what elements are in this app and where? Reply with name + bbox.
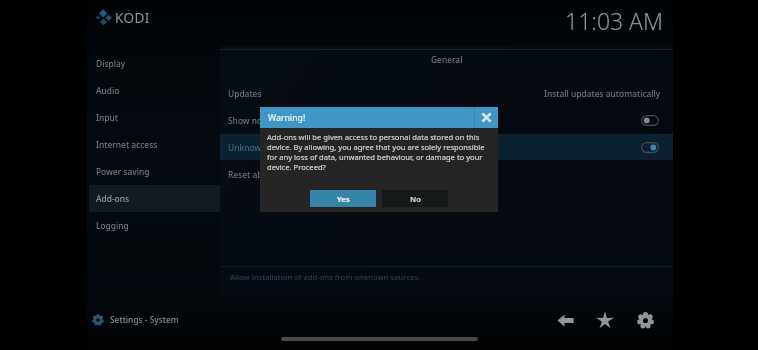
- staticText: Allow installation of add-ons from unkno…: [230, 272, 421, 282]
- button[interactable]: Yes: [310, 190, 376, 207]
- staticText: KODI: [115, 9, 150, 27]
- staticText: 11:03 AM: [565, 5, 664, 36]
- button[interactable]: Updates: [220, 80, 673, 106]
- button[interactable]: Power saving: [89, 158, 220, 185]
- staticText: Internet access: [96, 139, 158, 150]
- button[interactable]: Logging: [89, 212, 220, 239]
- button[interactable]: Toggle off: [641, 115, 659, 126]
- button[interactable]: No: [382, 190, 448, 207]
- button[interactable]: Favourites: [592, 307, 618, 333]
- staticText: General: [431, 54, 463, 65]
- staticText: Add-ons will be given access to personal…: [267, 132, 499, 172]
- button[interactable]: Audio: [89, 77, 220, 104]
- staticText: Input: [96, 112, 118, 123]
- staticText: Install updates automatically: [544, 88, 661, 99]
- staticText: No: [410, 194, 421, 204]
- staticText: Updates: [228, 88, 262, 99]
- button[interactable]: Input: [89, 104, 220, 131]
- button[interactable]: Internet access: [89, 131, 220, 158]
- button[interactable]: Settings - System: [92, 308, 179, 326]
- staticText: Settings - System: [110, 314, 179, 325]
- staticText: Reset above settings to default: [228, 169, 353, 180]
- staticText: Unknown sources: [228, 142, 300, 153]
- staticText: Add-ons: [96, 193, 130, 204]
- staticText: Show notifications: [228, 115, 302, 126]
- staticText: Power saving: [96, 166, 150, 177]
- button[interactable]: Reset above settings to default: [220, 161, 673, 187]
- staticText: Display: [96, 58, 126, 69]
- button[interactable]: Toggle on: [641, 142, 659, 153]
- button[interactable]: Settings: [632, 307, 658, 333]
- button[interactable]: Show notifications: [220, 107, 673, 133]
- staticText: Warning!: [268, 112, 306, 124]
- button[interactable]: Add-ons: [89, 185, 220, 212]
- staticText: Audio: [96, 85, 120, 96]
- button[interactable]: Back: [552, 307, 578, 333]
- staticText: Yes: [337, 194, 350, 204]
- button[interactable]: Unknown sources: [220, 134, 673, 160]
- staticText: Logging: [96, 220, 129, 231]
- button[interactable]: Close: [475, 107, 498, 128]
- button[interactable]: Display: [89, 50, 220, 77]
